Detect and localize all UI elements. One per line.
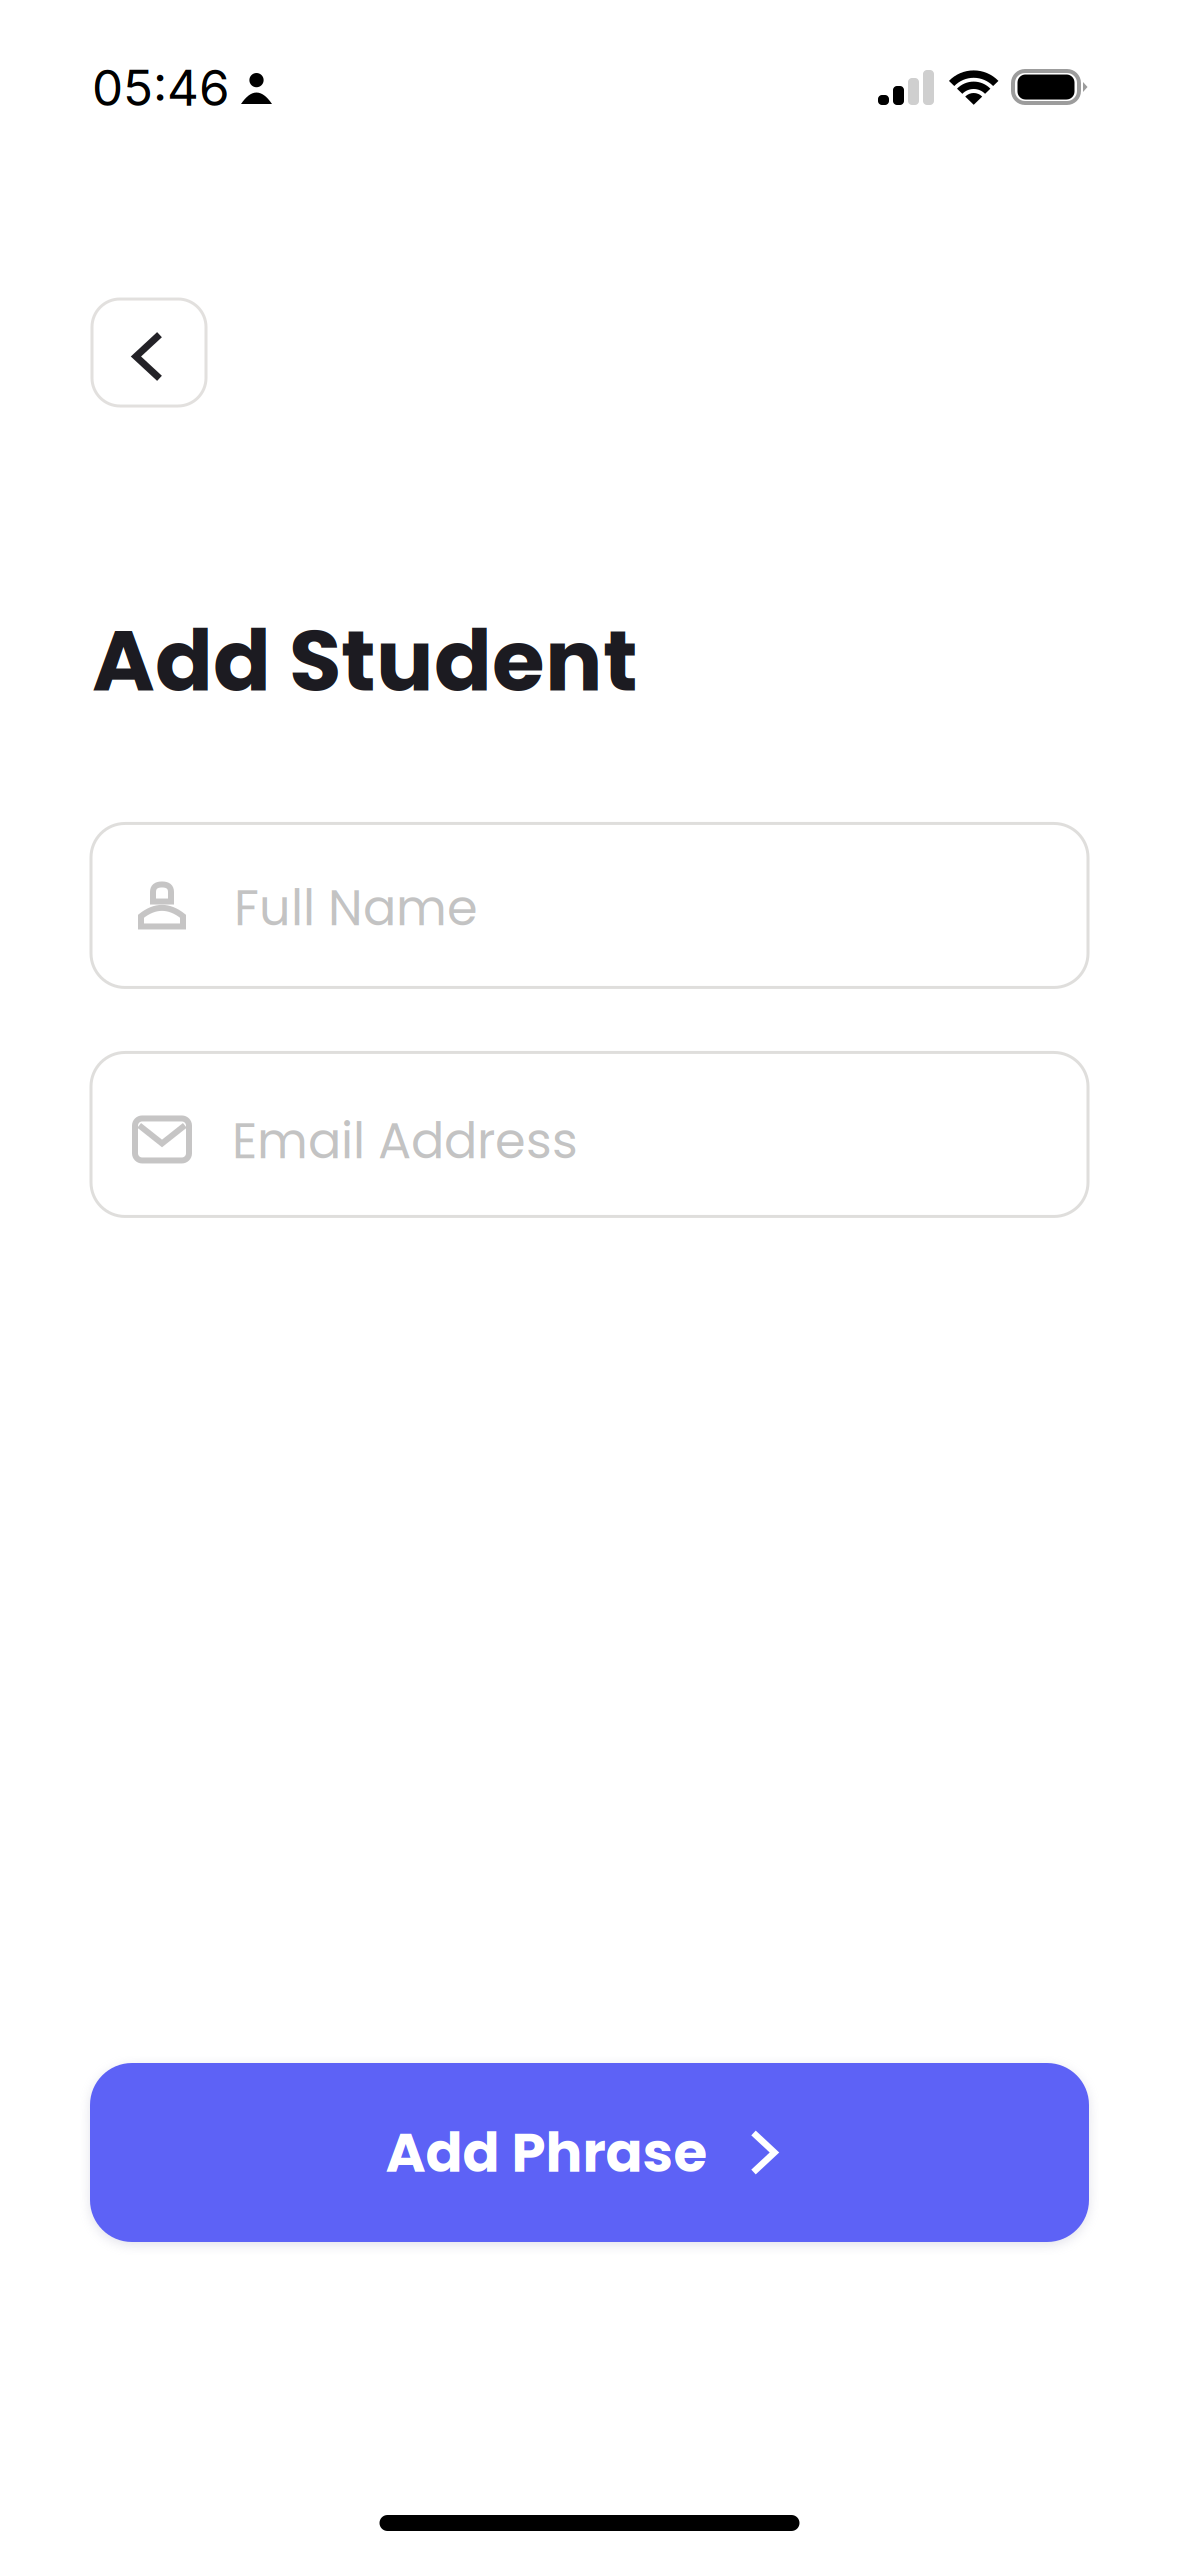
button[interactable]: Add Phrase (90, 2063, 1089, 2242)
staticText: Email Address (232, 1106, 578, 1176)
staticText: Full Name (234, 873, 478, 943)
staticText: Add Phrase (385, 2114, 707, 2191)
button[interactable]: Back (92, 299, 206, 406)
staticText: Add Student (92, 601, 638, 720)
staticText: 05:46 (92, 58, 230, 118)
